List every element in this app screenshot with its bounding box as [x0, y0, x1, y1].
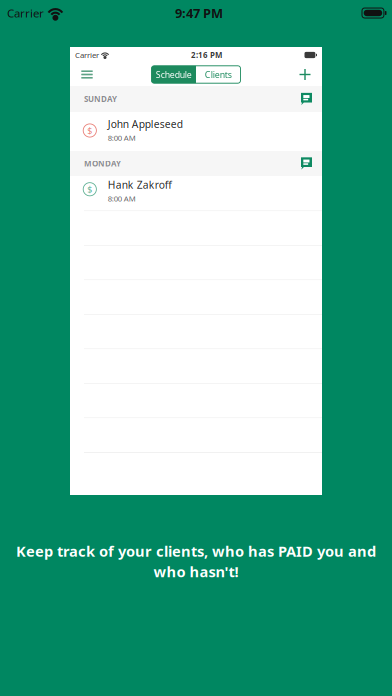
button[interactable]: Clients: [196, 66, 240, 83]
staticText: $: [87, 124, 92, 136]
staticText: SUNDAY: [84, 94, 117, 104]
button[interactable]: Schedule: [151, 66, 196, 83]
button[interactable]: Menu: [70, 63, 104, 86]
staticText: Hank Zakroff: [108, 178, 172, 192]
button[interactable]: New appointment: [288, 63, 322, 86]
staticText: Carrier: [7, 5, 44, 21]
button[interactable]: Message SUNDAY clients: [295, 86, 317, 112]
staticText: 8:00 AM: [108, 193, 136, 204]
staticText: $: [87, 183, 92, 195]
button[interactable]: $: [70, 112, 322, 151]
staticText: 8:00 AM: [108, 133, 136, 143]
staticText: John Appleseed: [108, 117, 183, 131]
staticText: Keep track of your clients, who has PAID…: [16, 541, 376, 561]
staticText: 9:47 PM: [175, 4, 223, 22]
button[interactable]: Message MONDAY clients: [295, 151, 317, 176]
staticText: 2:16 PM: [191, 50, 222, 60]
staticText: Schedule: [156, 68, 192, 80]
staticText: MONDAY: [84, 158, 121, 169]
staticText: Clients: [205, 68, 232, 80]
button[interactable]: $: [70, 176, 322, 210]
staticText: Carrier: [75, 50, 99, 60]
staticText: who hasn't!: [153, 561, 238, 581]
